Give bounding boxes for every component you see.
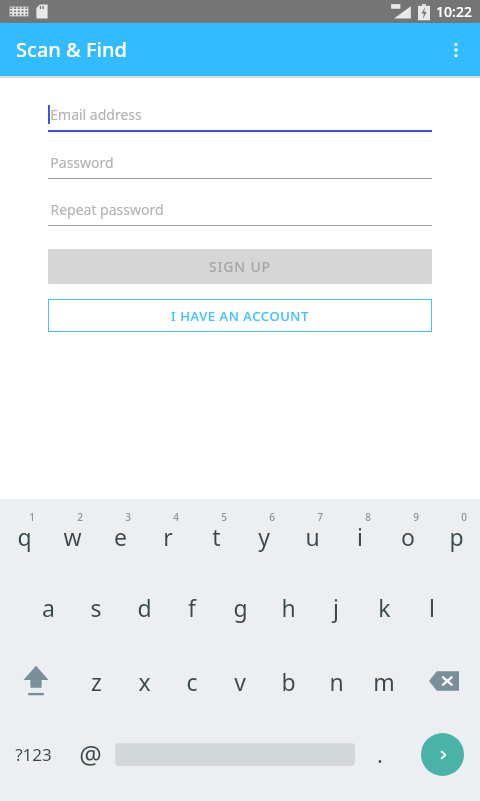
staticText: I HAVE AN ACCOUNT	[171, 307, 309, 325]
button[interactable]: .	[355, 727, 404, 781]
staticText: d	[137, 592, 152, 623]
staticText: h	[281, 592, 296, 623]
button[interactable]: 6	[240, 507, 288, 563]
button[interactable]: @	[66, 727, 115, 781]
button[interactable]: z	[72, 655, 120, 707]
button[interactable]: I HAVE AN ACCOUNT	[48, 299, 432, 332]
button[interactable]: s	[72, 581, 120, 633]
staticText: z	[91, 666, 102, 697]
button[interactable]: a	[24, 581, 72, 633]
button[interactable]: n	[312, 655, 360, 707]
button[interactable]: 3	[96, 507, 144, 563]
button[interactable]: 1	[0, 507, 48, 563]
button[interactable]: l	[408, 581, 456, 633]
button[interactable]: Password	[48, 150, 432, 179]
staticText: Email address	[50, 105, 142, 124]
staticText: s	[90, 592, 102, 623]
button[interactable]: Next	[404, 727, 480, 781]
staticText: 3	[125, 510, 131, 524]
button[interactable]: More options	[432, 26, 480, 74]
staticText: 5	[221, 510, 227, 524]
staticText: .	[377, 739, 383, 769]
button[interactable]: 7	[288, 507, 336, 563]
button[interactable]: f	[168, 581, 216, 633]
staticText: Scan & Find	[16, 36, 127, 63]
staticText: 6	[269, 510, 275, 524]
button[interactable]: Backspace	[408, 655, 480, 707]
staticText: 8	[365, 510, 371, 524]
button[interactable]: k	[360, 581, 408, 633]
staticText: y	[258, 521, 270, 552]
button[interactable]: c	[168, 655, 216, 707]
staticText: o	[401, 521, 415, 552]
staticText: v	[234, 666, 246, 697]
staticText: 4	[173, 510, 179, 524]
staticText: g	[233, 592, 248, 623]
staticText: u	[305, 521, 320, 552]
staticText: q	[17, 521, 32, 552]
staticText: j	[333, 592, 339, 623]
staticText: ?123	[15, 743, 52, 766]
button[interactable]: Space	[115, 727, 355, 781]
button[interactable]: 0	[432, 507, 480, 563]
staticText: 7	[317, 510, 323, 524]
staticText: x	[138, 666, 151, 697]
button[interactable]: 5	[192, 507, 240, 563]
staticText: 10:22	[436, 2, 472, 21]
staticText: Repeat password	[50, 200, 164, 219]
staticText: w	[63, 521, 82, 552]
button[interactable]: Shift	[0, 655, 72, 707]
button[interactable]: d	[120, 581, 168, 633]
button[interactable]: Email address	[48, 102, 432, 132]
button[interactable]: x	[120, 655, 168, 707]
staticText: b	[281, 666, 296, 697]
staticText: i	[357, 521, 363, 552]
button[interactable]: ?123	[0, 727, 66, 781]
button[interactable]: j	[312, 581, 360, 633]
staticText: k	[378, 592, 391, 623]
button[interactable]: 2	[48, 507, 96, 563]
button[interactable]: h	[264, 581, 312, 633]
staticText: 1	[29, 510, 35, 524]
staticText: 2	[77, 510, 83, 524]
staticText: l	[429, 592, 435, 623]
staticText: r	[163, 521, 173, 552]
button[interactable]: 8	[336, 507, 384, 563]
button[interactable]: v	[216, 655, 264, 707]
staticText: t	[212, 521, 221, 552]
staticText: c	[186, 666, 198, 697]
button[interactable]: 9	[384, 507, 432, 563]
staticText: e	[114, 521, 127, 552]
staticText: SIGN UP	[209, 257, 271, 276]
staticText: Password	[50, 153, 114, 172]
staticText: f	[188, 592, 196, 623]
button[interactable]: SIGN UP	[48, 249, 432, 284]
staticText: @	[79, 737, 102, 771]
button[interactable]: Repeat password	[48, 197, 432, 226]
staticText: a	[42, 592, 55, 623]
staticText: p	[449, 521, 464, 552]
staticText: 0	[461, 510, 467, 524]
button[interactable]: g	[216, 581, 264, 633]
button[interactable]: m	[360, 655, 408, 707]
staticText: 9	[413, 510, 419, 524]
staticText: m	[373, 666, 395, 697]
staticText: n	[329, 666, 344, 697]
button[interactable]: 4	[144, 507, 192, 563]
button[interactable]: b	[264, 655, 312, 707]
